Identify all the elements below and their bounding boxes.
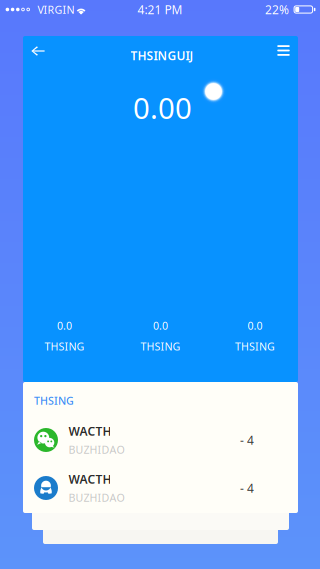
staticText: THSING <box>34 393 74 408</box>
staticText: - 4 <box>240 432 254 448</box>
button[interactable]: WACTH <box>23 416 298 464</box>
button[interactable]: WACTH <box>23 464 298 512</box>
staticText: THSING <box>44 339 84 353</box>
staticText: - 4 <box>240 480 254 496</box>
staticText: 0.0 <box>247 318 262 333</box>
staticText: BUZHIDAO <box>68 491 124 505</box>
staticText: THSING <box>235 339 275 353</box>
staticText: 22% <box>265 2 289 18</box>
staticText: WACTH <box>68 423 111 439</box>
staticText: VIRGIN <box>37 3 74 17</box>
staticText: 4:21 PM <box>137 2 182 18</box>
staticText: WACTH <box>68 471 111 487</box>
button[interactable]: Menu <box>268 36 298 64</box>
staticText: 0.00 <box>133 88 192 127</box>
staticText: 0.0 <box>57 318 72 333</box>
staticText: THSING <box>140 339 180 353</box>
button[interactable]: Back <box>23 37 53 65</box>
staticText: 0.0 <box>153 318 168 333</box>
staticText: THSINGUIJ <box>130 47 193 63</box>
staticText: BUZHIDAO <box>68 443 124 457</box>
